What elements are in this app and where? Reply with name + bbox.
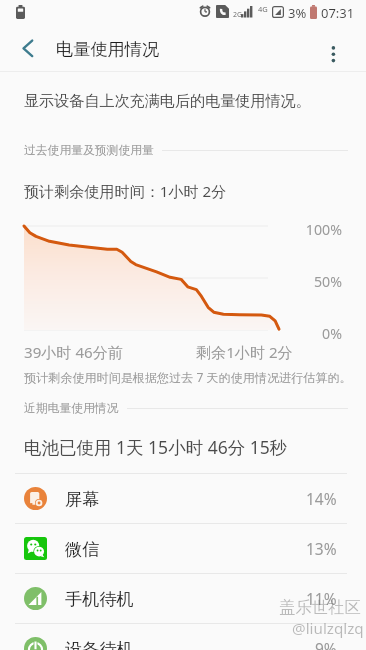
staticText: 39小时 46分前 xyxy=(24,342,123,363)
staticText: 14% xyxy=(306,488,337,509)
button[interactable]: 微信 xyxy=(0,524,366,573)
staticText: 预计剩余使用时间：1小时 2分 xyxy=(24,181,227,202)
button[interactable]: More options xyxy=(314,30,354,70)
staticText: 微信 xyxy=(65,538,100,560)
staticText: 手机待机 xyxy=(65,588,134,610)
staticText: 2G xyxy=(233,10,243,20)
staticText: 盖乐世社区 xyxy=(279,597,361,618)
staticText: 11% xyxy=(306,588,337,609)
staticText: 近期电量使用情况 xyxy=(24,401,119,416)
staticText: 过去使用量及预测使用量 xyxy=(24,143,154,158)
button[interactable]: Back xyxy=(8,30,48,70)
staticText: 4G xyxy=(258,4,268,14)
staticText: 显示设备自上次充满电后的电量使用情况。 xyxy=(24,91,311,110)
staticText: 13% xyxy=(306,538,337,559)
button[interactable]: 设备待机 xyxy=(0,624,366,650)
staticText: 设备待机 xyxy=(65,638,134,650)
staticText: 电池已使用 1天 15小时 46分 15秒 xyxy=(24,435,288,459)
staticText: 100% xyxy=(290,220,342,239)
staticText: 剩余1小时 2分 xyxy=(196,342,293,363)
staticText: 07:31 xyxy=(321,4,355,22)
staticText: 0% xyxy=(290,324,342,343)
staticText: 3% xyxy=(288,4,307,22)
staticText: 屏幕 xyxy=(65,488,100,510)
staticText: 9% xyxy=(315,638,337,650)
staticText: 预计剩余使用时间是根据您过去 7 天的使用情况进行估算的。 xyxy=(24,369,352,386)
staticText: @liulzqlzq xyxy=(292,618,364,639)
staticText: 电量使用情况 xyxy=(56,38,160,60)
staticText: 50% xyxy=(290,272,342,291)
button[interactable]: 屏幕 xyxy=(0,474,366,523)
button[interactable]: 手机待机 xyxy=(0,574,366,623)
